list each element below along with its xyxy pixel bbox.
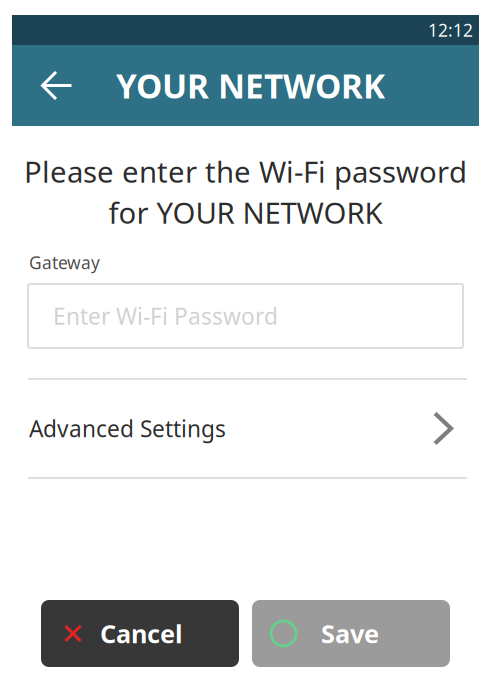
staticText: Enter Wi-Fi Password bbox=[53, 301, 278, 331]
staticText: for YOUR NETWORK bbox=[108, 193, 382, 232]
staticText: Save bbox=[321, 617, 379, 650]
staticText: Cancel bbox=[100, 617, 183, 650]
button[interactable]: Save bbox=[252, 600, 450, 667]
staticText: Please enter the Wi-Fi password bbox=[24, 152, 467, 191]
button[interactable]: Back bbox=[12, 45, 116, 126]
button[interactable]: Advanced Settings bbox=[12, 380, 479, 477]
button[interactable]: Cancel bbox=[41, 600, 239, 667]
staticText: YOUR NETWORK bbox=[116, 63, 385, 108]
staticText: 12:12 bbox=[428, 18, 473, 41]
staticText: Gateway bbox=[29, 251, 100, 274]
staticText: Advanced Settings bbox=[29, 413, 226, 443]
